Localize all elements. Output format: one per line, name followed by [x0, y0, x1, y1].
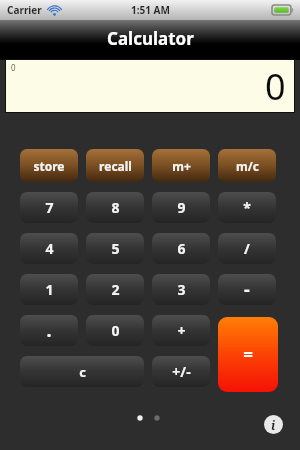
staticText: recall — [99, 158, 132, 174]
button[interactable]: . — [20, 315, 78, 346]
button[interactable]: 1 — [20, 274, 78, 305]
staticText: 4 — [45, 239, 54, 258]
button[interactable]: 9 — [152, 192, 210, 223]
staticText: = — [243, 343, 253, 366]
button[interactable]: 7 — [20, 192, 78, 223]
staticText: 0 — [111, 321, 120, 340]
staticText: 3 — [177, 280, 186, 299]
button[interactable]: 0 — [86, 315, 144, 346]
button[interactable]: m+ — [152, 149, 210, 182]
staticText: store — [33, 158, 65, 174]
staticText: - — [244, 277, 250, 302]
staticText: i — [271, 417, 276, 433]
button[interactable]: c — [20, 356, 144, 387]
button[interactable]: store — [20, 149, 78, 182]
staticText: 7 — [45, 198, 54, 217]
staticText: 0 — [265, 62, 286, 111]
button[interactable]: 2 — [86, 274, 144, 305]
staticText: +/- — [172, 362, 191, 381]
button[interactable]: 3 — [152, 274, 210, 305]
staticText: Calculator — [107, 27, 194, 50]
button[interactable]: + — [152, 315, 210, 346]
button[interactable]: * — [218, 192, 276, 223]
staticText: 0 — [11, 62, 16, 73]
staticText: 6 — [177, 239, 186, 258]
staticText: 5 — [111, 239, 120, 258]
staticText: 2 — [111, 280, 120, 299]
button[interactable]: 8 — [86, 192, 144, 223]
button[interactable]: 6 — [152, 233, 210, 264]
staticText: c — [79, 363, 86, 381]
staticText: 1 — [45, 280, 54, 299]
staticText: / — [244, 239, 250, 258]
staticText: + — [177, 321, 186, 340]
button[interactable]: recall — [86, 149, 144, 182]
button[interactable]: = — [218, 317, 278, 392]
button[interactable]: +/- — [152, 356, 210, 387]
button[interactable]: 5 — [86, 233, 144, 264]
button[interactable]: Info — [262, 413, 285, 436]
button[interactable]: 4 — [20, 233, 78, 264]
staticText: * — [243, 198, 251, 217]
staticText: Carrier — [7, 3, 42, 17]
staticText: . — [46, 318, 52, 343]
staticText: m/c — [236, 158, 259, 174]
staticText: 9 — [177, 198, 186, 217]
button[interactable]: m/c — [218, 149, 276, 182]
staticText: 1:51 AM — [131, 3, 170, 17]
staticText: m+ — [172, 158, 191, 174]
staticText: 8 — [111, 198, 120, 217]
button[interactable]: / — [218, 233, 276, 264]
button[interactable]: - — [218, 274, 276, 305]
